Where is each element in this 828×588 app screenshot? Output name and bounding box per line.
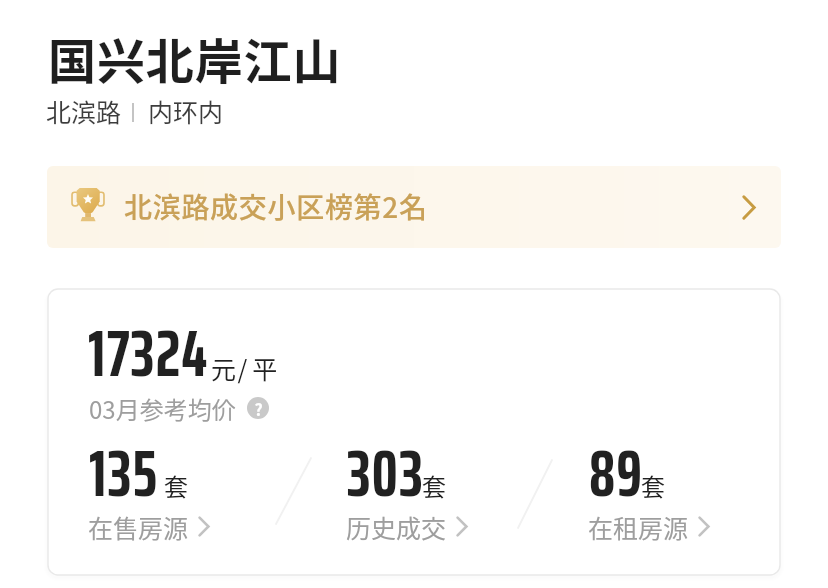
staticText: 历史成交 (346, 509, 447, 545)
staticText: 303 (347, 422, 424, 522)
staticText: ? (254, 397, 263, 419)
staticText: 套 (641, 468, 665, 503)
staticText: 在租房源 (588, 509, 689, 545)
button[interactable]: 说明 (247, 397, 269, 419)
staticText: 135 (89, 422, 159, 522)
button[interactable]: 查看榜单 (729, 187, 769, 227)
button[interactable]: 303 (346, 421, 536, 521)
staticText: 03月参考均价 (89, 391, 236, 426)
staticText: 元 / 平 (211, 350, 278, 386)
staticText: 17324 (88, 302, 209, 404)
staticText: 国兴北岸江山 (48, 23, 342, 93)
staticText: 内环内 (148, 93, 224, 129)
staticText: 北滨路成交小区榜第2名 (124, 186, 428, 227)
button[interactable]: 135 (88, 421, 278, 521)
button[interactable]: 北滨路成交小区榜第2名 (47, 166, 781, 248)
staticText: 套 (164, 468, 188, 503)
staticText: 套 (422, 468, 446, 503)
staticText: 89 (589, 422, 644, 522)
button[interactable]: 89 (588, 421, 778, 521)
staticText: 在售房源 (88, 509, 189, 545)
staticText: 北滨路 (46, 93, 122, 129)
